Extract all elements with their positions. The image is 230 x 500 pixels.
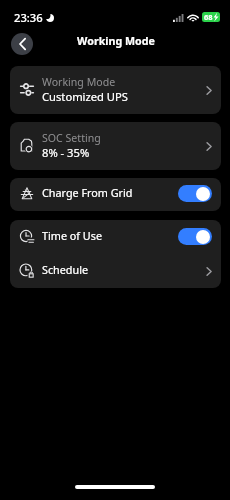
button[interactable]: Back [11,33,33,55]
staticText: Working Mode [42,75,116,89]
staticText: Time of Use [42,228,178,243]
staticText: SOC Setting [42,131,101,145]
button[interactable]: Toggle [178,228,212,245]
staticText: Working Mode [77,34,155,49]
staticText: 23:36 [14,10,43,25]
button[interactable]: Time of Use [10,220,221,254]
button[interactable]: Working Mode [10,66,221,114]
staticText: Schedule [42,262,206,277]
button[interactable]: Schedule [10,254,221,288]
staticText: Customized UPS [42,89,128,104]
button[interactable]: Toggle [178,185,212,202]
staticText: 8% - 35% [42,145,90,160]
staticText: 68 [204,12,213,22]
button[interactable]: Charge From Grid [10,178,221,211]
staticText: Charge From Grid [42,185,178,200]
button[interactable]: SOC Setting [10,122,221,170]
